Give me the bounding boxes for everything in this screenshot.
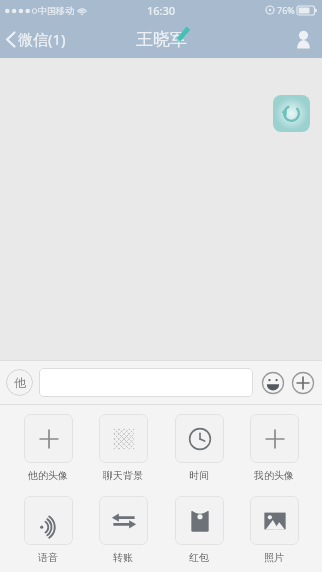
staticText: 他的头像 bbox=[28, 469, 68, 482]
staticText: 76% bbox=[277, 4, 295, 16]
staticText: 红包 bbox=[189, 551, 209, 564]
button[interactable]: 时间 bbox=[171, 414, 227, 482]
button[interactable]: Contact profile bbox=[285, 24, 322, 55]
staticText: 他 bbox=[14, 375, 26, 390]
button[interactable]: 转账 bbox=[95, 496, 151, 564]
staticText: 照片 bbox=[264, 551, 284, 564]
button[interactable]: 我的头像 bbox=[246, 414, 302, 482]
staticText: 16:30 bbox=[147, 3, 176, 18]
button[interactable]: 他的头像 bbox=[20, 414, 76, 482]
button[interactable]: Recall message bbox=[273, 95, 310, 132]
button[interactable]: 照片 bbox=[246, 496, 302, 564]
staticText: 微信(1) bbox=[18, 29, 66, 49]
button[interactable] bbox=[39, 368, 253, 397]
button[interactable]: 红包 bbox=[171, 496, 227, 564]
staticText: 聊天背景 bbox=[103, 469, 143, 482]
staticText: 我的头像 bbox=[254, 469, 294, 482]
button[interactable]: 语音 bbox=[20, 496, 76, 564]
button[interactable]: More options bbox=[290, 370, 316, 396]
staticText: 时间 bbox=[189, 469, 209, 482]
staticText: 王晓军 bbox=[136, 29, 187, 50]
button[interactable]: 微信(1) bbox=[0, 23, 74, 55]
button[interactable]: 聊天背景 bbox=[95, 414, 151, 482]
staticText: 语音 bbox=[38, 551, 58, 564]
button[interactable]: 他 bbox=[6, 369, 33, 396]
button[interactable]: Emoji bbox=[260, 370, 286, 396]
staticText: 中国移动 bbox=[38, 5, 74, 16]
staticText: 转账 bbox=[113, 551, 133, 564]
